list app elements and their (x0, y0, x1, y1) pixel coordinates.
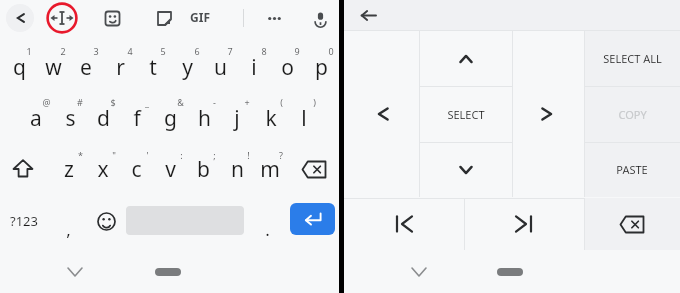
button[interactable]: PASTE (584, 142, 680, 197)
button[interactable]: SELECT (419, 86, 512, 142)
button[interactable]: v (153, 146, 187, 192)
staticText: r (116, 53, 125, 82)
button[interactable]: Move down (419, 142, 512, 197)
staticText: o (281, 53, 294, 82)
staticText: 3 (93, 45, 99, 57)
button[interactable]: r (103, 44, 137, 90)
button[interactable]: Move to end (464, 198, 584, 250)
button[interactable]: q (2, 44, 36, 90)
staticText: - (213, 96, 216, 108)
button[interactable]: p (304, 44, 338, 90)
staticText: 8 (261, 45, 267, 57)
button[interactable]: f (120, 95, 154, 141)
button[interactable]: Stickers (100, 6, 124, 30)
staticText: d (97, 104, 110, 133)
staticText: m (260, 155, 280, 184)
button[interactable]: l (287, 95, 321, 141)
button[interactable]: m (253, 146, 287, 192)
staticText: ( (280, 96, 283, 108)
staticText: p (315, 53, 328, 82)
button[interactable]: Back (352, 0, 384, 30)
staticText: ) (313, 96, 316, 108)
button[interactable]: Move right (512, 31, 584, 197)
button[interactable]: Enter (290, 203, 335, 235)
staticText: 2 (60, 45, 66, 57)
button[interactable]: a (19, 95, 53, 141)
staticText: PASTE (616, 162, 648, 177)
staticText: 5 (160, 45, 166, 57)
button[interactable]: g (153, 95, 187, 141)
staticText: ? (279, 149, 283, 161)
staticText: l (301, 104, 307, 133)
button[interactable]: Move up (419, 31, 512, 86)
staticText: . (265, 218, 270, 241)
staticText: * (78, 149, 83, 161)
button[interactable]: n (220, 146, 254, 192)
button[interactable]: Text editing (46, 2, 78, 34)
button[interactable]: k (254, 95, 288, 141)
button[interactable]: j (220, 95, 254, 141)
button[interactable]: Home (155, 268, 181, 276)
staticText: f (133, 104, 141, 133)
button[interactable]: ?123 (2, 197, 46, 245)
staticText: u (214, 53, 227, 82)
button[interactable]: t (136, 44, 170, 90)
staticText: z (64, 155, 74, 184)
staticText: COPY (618, 107, 647, 122)
button[interactable]: Move to start (344, 198, 464, 250)
button[interactable]: h (187, 95, 221, 141)
button[interactable]: y (170, 44, 204, 90)
button[interactable]: b (186, 146, 220, 192)
staticText: b (197, 155, 210, 184)
staticText: e (80, 53, 92, 82)
button[interactable]: c (119, 146, 153, 192)
staticText: : (180, 149, 183, 161)
button[interactable]: Backspace (584, 198, 680, 250)
staticText: 0 (328, 45, 334, 57)
button[interactable]: w (36, 44, 70, 90)
button[interactable]: Back (6, 4, 34, 32)
button[interactable]: GIF (190, 9, 210, 25)
staticText: , (66, 218, 71, 241)
button[interactable]: d (86, 95, 120, 141)
button[interactable]: Emoji (88, 197, 124, 245)
button[interactable]: o (270, 44, 304, 90)
button[interactable]: z (52, 146, 86, 192)
staticText: 1 (26, 45, 32, 57)
button[interactable]: COPY (584, 86, 680, 142)
button[interactable]: Backspace (291, 146, 337, 192)
button[interactable]: Home (497, 268, 523, 276)
button[interactable]: . (252, 197, 282, 245)
staticText: & (177, 96, 184, 108)
button[interactable]: Hide keyboard (60, 250, 90, 293)
staticText: 4 (127, 45, 133, 57)
staticText: v (165, 155, 176, 184)
staticText: s (65, 104, 76, 133)
button[interactable]: SELECT ALL (584, 31, 680, 86)
button[interactable]: Shift (2, 146, 44, 192)
staticText: j (234, 104, 240, 133)
button[interactable]: More options (262, 6, 286, 30)
button[interactable]: u (203, 44, 237, 90)
button[interactable]: , (50, 197, 86, 245)
staticText: + (244, 96, 250, 108)
staticText: t (149, 53, 157, 82)
button[interactable]: e (69, 44, 103, 90)
button[interactable]: Voice input (308, 6, 332, 30)
button[interactable]: x (86, 146, 120, 192)
button[interactable]: Clipboard (152, 6, 176, 30)
staticText: " (112, 149, 116, 161)
staticText: g (164, 104, 177, 133)
staticText: n (231, 155, 244, 184)
staticText: a (30, 104, 42, 133)
staticText: ! (247, 149, 250, 161)
button[interactable]: i (237, 44, 271, 90)
staticText: @ (42, 96, 51, 108)
staticText: w (45, 53, 62, 82)
button[interactable]: s (53, 95, 87, 141)
staticText: 9 (294, 45, 300, 57)
button[interactable]: Hide keyboard (404, 250, 434, 293)
button[interactable]: Move left (344, 31, 419, 197)
staticText: SELECT (447, 107, 485, 122)
